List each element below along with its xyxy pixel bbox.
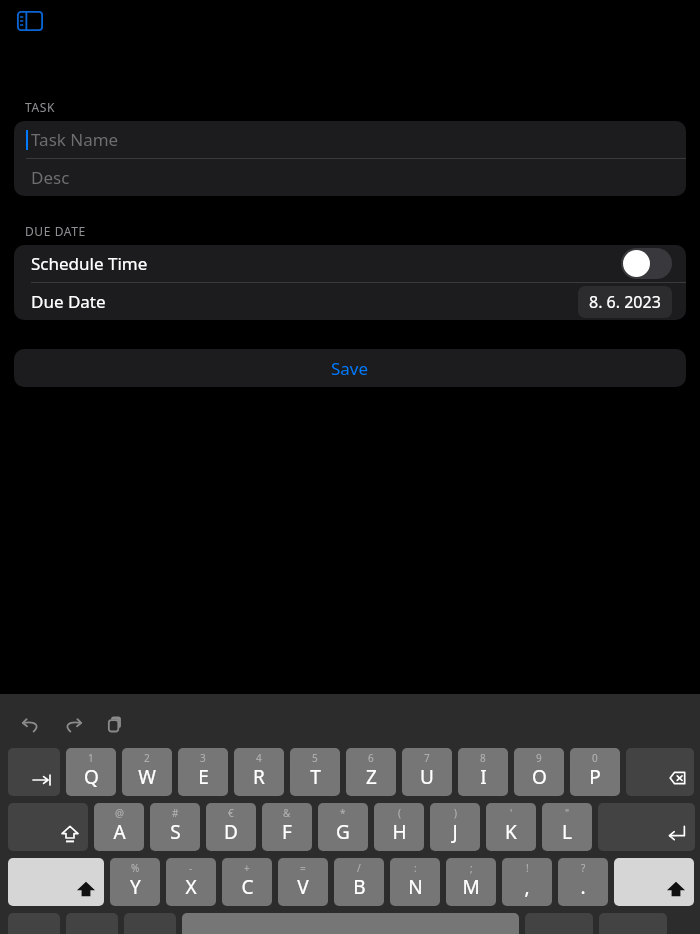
button[interactable]: @ xyxy=(94,803,144,851)
staticText: A xyxy=(113,819,126,845)
staticText: 5 xyxy=(312,751,318,765)
staticText: 8. 6. 2023 xyxy=(589,291,661,313)
button[interactable]: 1 xyxy=(66,748,116,796)
staticText: : xyxy=(414,861,417,875)
staticText: % xyxy=(131,861,140,875)
staticText: * xyxy=(340,806,346,820)
button[interactable]: ; xyxy=(446,858,496,906)
staticText: ) xyxy=(454,806,457,820)
button[interactable]: % xyxy=(110,858,160,906)
staticText: 9 xyxy=(536,751,542,765)
button[interactable]: Undo xyxy=(14,707,48,741)
button[interactable]: & xyxy=(262,803,312,851)
button[interactable]: Tab xyxy=(8,748,60,796)
staticText: Task Name xyxy=(31,128,119,151)
staticText: € xyxy=(228,806,234,820)
staticText: M xyxy=(462,874,480,900)
staticText: W xyxy=(138,764,156,790)
button[interactable]: Schedule Time xyxy=(14,245,686,282)
button[interactable]: Shift xyxy=(614,858,694,906)
button[interactable]: 8. 6. 2023 xyxy=(578,286,672,318)
staticText: ( xyxy=(398,806,401,820)
button[interactable]: Shift xyxy=(8,858,104,906)
button[interactable]: € xyxy=(206,803,256,851)
staticText: , xyxy=(524,874,530,900)
button[interactable]: Caps lock xyxy=(8,803,88,851)
staticText: I xyxy=(480,764,487,790)
staticText: . xyxy=(580,874,586,900)
staticText: 8 xyxy=(480,751,486,765)
staticText: S xyxy=(170,819,181,845)
staticText: ; xyxy=(470,861,473,875)
button[interactable]: + xyxy=(222,858,272,906)
staticText: TASK xyxy=(25,99,55,115)
staticText: U xyxy=(420,764,434,790)
staticText: F xyxy=(282,819,292,845)
button[interactable]: 3 xyxy=(178,748,228,796)
button[interactable]: Desc xyxy=(14,159,686,196)
button[interactable]: ? xyxy=(558,858,608,906)
staticText: C xyxy=(241,874,254,900)
staticText: Schedule Time xyxy=(31,252,148,275)
staticText: ' xyxy=(510,806,513,820)
staticText: T xyxy=(310,764,321,790)
staticText: X xyxy=(185,874,197,900)
button[interactable]: " xyxy=(542,803,592,851)
staticText: B xyxy=(353,874,366,900)
button[interactable]: Due Date xyxy=(14,283,686,320)
button[interactable]: / xyxy=(334,858,384,906)
staticText: Q xyxy=(84,764,99,790)
staticText: 6 xyxy=(368,751,374,765)
button[interactable]: - xyxy=(166,858,216,906)
staticText: R xyxy=(253,764,265,790)
staticText: Z xyxy=(366,764,377,790)
staticText: V xyxy=(297,874,309,900)
staticText: Y xyxy=(130,874,141,900)
button[interactable]: 4 xyxy=(234,748,284,796)
button[interactable]: Redo xyxy=(56,707,90,741)
staticText: # xyxy=(172,806,179,820)
staticText: D xyxy=(224,819,238,845)
staticText: 1 xyxy=(88,751,94,765)
staticText: L xyxy=(562,819,572,845)
staticText: H xyxy=(392,819,407,845)
button[interactable]: # xyxy=(150,803,200,851)
button[interactable]: ) xyxy=(430,803,480,851)
staticText: ! xyxy=(526,861,529,875)
button[interactable]: Toggle sidebar xyxy=(14,8,46,34)
button[interactable]: Task Name xyxy=(14,121,686,158)
button[interactable]: * xyxy=(318,803,368,851)
button[interactable]: 2 xyxy=(122,748,172,796)
button[interactable]: Backspace xyxy=(626,748,694,796)
button[interactable]: ( xyxy=(374,803,424,851)
staticText: + xyxy=(244,861,250,875)
button[interactable]: Save xyxy=(14,349,686,387)
button[interactable]: ! xyxy=(502,858,552,906)
staticText: ? xyxy=(581,861,586,875)
staticText: N xyxy=(408,874,423,900)
staticText: 2 xyxy=(144,751,150,765)
button[interactable]: Copy xyxy=(98,707,132,741)
staticText: P xyxy=(589,764,601,790)
staticText: Due Date xyxy=(31,290,106,313)
button[interactable]: 5 xyxy=(290,748,340,796)
staticText: J xyxy=(452,819,458,845)
staticText: 4 xyxy=(256,751,262,765)
button[interactable]: 8 xyxy=(458,748,508,796)
button[interactable]: = xyxy=(278,858,328,906)
button[interactable]: Return xyxy=(598,803,695,851)
button[interactable]: 0 xyxy=(570,748,620,796)
staticText: DUE DATE xyxy=(25,223,86,239)
button[interactable]: 7 xyxy=(402,748,452,796)
button[interactable]: ' xyxy=(486,803,536,851)
button[interactable]: 9 xyxy=(514,748,564,796)
staticText: " xyxy=(565,806,570,820)
button[interactable]: 6 xyxy=(346,748,396,796)
button[interactable]: : xyxy=(390,858,440,906)
